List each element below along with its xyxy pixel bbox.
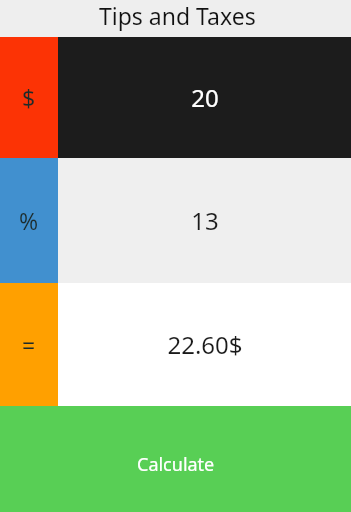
staticText: 13 [191, 204, 219, 237]
button[interactable]: Calculate [0, 406, 351, 512]
button[interactable]: Result [0, 283, 58, 406]
staticText: Calculate [137, 452, 215, 477]
button[interactable]: 22.60$ [58, 283, 351, 406]
button[interactable]: 20 [58, 37, 351, 158]
staticText: 20 [191, 81, 219, 114]
staticText: 22.60$ [167, 328, 243, 361]
button[interactable]: 13 [58, 158, 351, 283]
button[interactable]: Tip percentage [0, 158, 58, 283]
staticText: % [19, 205, 39, 236]
staticText: Tips and Taxes [99, 0, 256, 31]
staticText: $ [22, 82, 36, 113]
staticText: = [22, 329, 36, 360]
button[interactable]: Amount in dollars [0, 37, 58, 158]
